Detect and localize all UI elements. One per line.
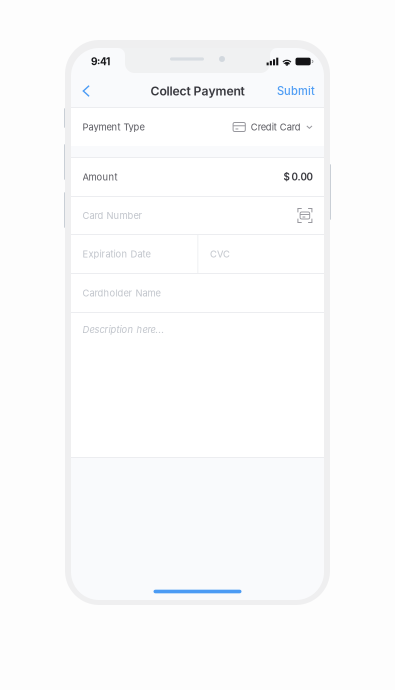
staticText: CVC	[210, 248, 230, 260]
staticText: Payment Type	[82, 121, 144, 133]
staticText: 9:41	[91, 55, 110, 68]
button[interactable]: Card Number	[71, 197, 324, 234]
button[interactable]: Amount	[71, 158, 324, 196]
staticText: Cardholder Name	[82, 287, 160, 299]
button[interactable]: Expiration Date	[71, 235, 197, 273]
button[interactable]: Payment Type	[71, 108, 324, 146]
staticText: Amount	[82, 171, 117, 183]
button[interactable]: CVC	[198, 235, 324, 273]
staticText: $ 0.00	[283, 171, 312, 183]
staticText: Collect Payment	[150, 84, 244, 98]
staticText: Card Number	[82, 210, 142, 221]
button[interactable]: Submit	[267, 75, 324, 107]
button[interactable]: Description here...	[71, 313, 324, 457]
staticText: Expiration Date	[82, 248, 150, 260]
staticText: Submit	[277, 84, 315, 98]
staticText: Credit Card	[251, 121, 301, 133]
staticText: Description here...	[82, 324, 164, 335]
button[interactable]: Cardholder Name	[71, 274, 324, 312]
button[interactable]: Back	[71, 75, 100, 107]
